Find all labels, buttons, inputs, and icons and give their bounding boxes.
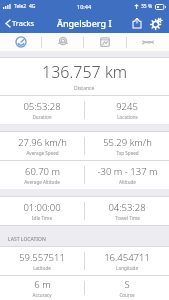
staticText: 04:53:28: [108, 201, 146, 214]
staticText: LAST LOCATION: [8, 236, 46, 243]
button[interactable]: 59.557511: [0, 247, 84, 275]
staticText: 136.757 km: [42, 61, 128, 83]
button[interactable]: 16.454711: [85, 247, 169, 275]
staticText: 60.70 m: [25, 165, 60, 178]
staticText: Latitude: [33, 265, 51, 271]
staticText: Ängelsberg I: [57, 17, 112, 29]
button[interactable]: Dashboard: [0, 33, 41, 51]
staticText: 16.454711: [104, 251, 150, 264]
button[interactable]: Tracks: [4, 16, 36, 30]
staticText: Average Altitude: [24, 179, 60, 185]
staticText: 10:44: [77, 3, 92, 10]
staticText: Locations: [117, 114, 138, 120]
button[interactable]: 04:53:28: [85, 197, 169, 225]
button[interactable]: Graph: [127, 33, 169, 51]
button[interactable]: 6 m: [0, 276, 84, 300]
button[interactable]: 01:00:00: [0, 197, 84, 225]
button[interactable]: 9245: [85, 96, 169, 124]
button[interactable]: 60.70 m: [0, 161, 84, 189]
staticText: Course: [119, 292, 135, 298]
staticText: Duration: [32, 114, 52, 120]
button[interactable]: 05:53:28: [0, 96, 84, 124]
staticText: 4G: [29, 3, 36, 10]
button[interactable]: -30 m - 137 m: [85, 161, 169, 189]
button[interactable]: 55.29 km/h: [85, 132, 169, 160]
staticText: 6 m: [34, 278, 51, 291]
staticText: Travel Time: [115, 215, 140, 221]
staticText: Average Speed: [26, 150, 59, 156]
staticText: 55.29 km/h: [103, 136, 152, 149]
button[interactable]: 27.96 km/h: [0, 132, 84, 160]
staticText: 27.96 km/h: [18, 136, 67, 149]
button[interactable]: Settings: [148, 15, 164, 31]
staticText: 05:53:28: [23, 100, 61, 113]
button[interactable]: S: [85, 276, 169, 300]
staticText: Longitude: [116, 265, 138, 271]
staticText: Top Speed: [116, 150, 139, 156]
button[interactable]: Share: [129, 15, 145, 31]
staticText: Idle Time: [32, 215, 52, 221]
staticText: Accuracy: [32, 292, 52, 298]
staticText: -30 m - 137 m: [97, 165, 158, 178]
staticText: Distance: [74, 85, 95, 92]
staticText: Tracks: [12, 18, 35, 28]
button[interactable]: Map location: [42, 33, 83, 51]
staticText: 35 %: [141, 3, 153, 10]
staticText: 9245: [116, 100, 138, 113]
staticText: Altitude: [119, 179, 136, 185]
staticText: Tele2: [14, 3, 27, 10]
staticText: S: [124, 278, 130, 291]
staticText: 59.557511: [19, 251, 65, 264]
button[interactable]: Elevation map: [84, 33, 126, 51]
staticText: 01:00:00: [23, 201, 61, 214]
